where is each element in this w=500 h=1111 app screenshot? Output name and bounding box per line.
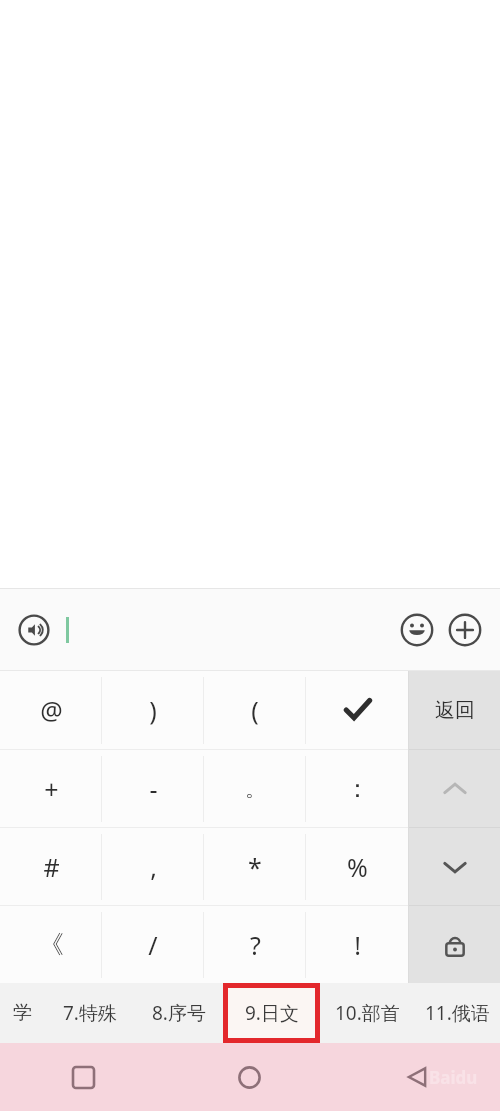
staticText: @ xyxy=(40,693,63,727)
button[interactable]: @ xyxy=(0,671,102,749)
staticText: / xyxy=(148,928,158,962)
staticText: ) xyxy=(149,693,157,727)
staticText: 学 xyxy=(13,1001,32,1025)
button[interactable]: 返回 xyxy=(409,671,500,749)
button[interactable]: Lock xyxy=(409,906,500,983)
button[interactable]: , xyxy=(102,828,204,905)
staticText: 返回 xyxy=(435,698,475,723)
staticText: 8.序号 xyxy=(152,1000,206,1026)
staticText: 9.日文 xyxy=(245,1000,299,1026)
button[interactable]: + xyxy=(0,750,102,827)
button[interactable]: 10.部首 xyxy=(320,983,415,1043)
staticText: 7.特殊 xyxy=(63,1000,117,1026)
staticText: - xyxy=(149,772,158,806)
button[interactable]: ( xyxy=(204,671,306,749)
staticText: 《 xyxy=(39,929,64,960)
staticText: ! xyxy=(354,928,361,962)
staticText: # xyxy=(43,850,60,884)
staticText: ? xyxy=(250,928,261,962)
button[interactable]: 8.序号 xyxy=(135,983,223,1043)
button[interactable]: Emoji xyxy=(396,609,438,651)
staticText: 10.部首 xyxy=(335,1000,400,1026)
button[interactable]: ： xyxy=(306,750,408,827)
staticText: , xyxy=(150,850,157,884)
button[interactable]: 。 xyxy=(204,750,306,827)
staticText: 11.俄语 xyxy=(425,1000,490,1026)
button[interactable]: / xyxy=(102,906,204,983)
button[interactable]: Home xyxy=(166,1043,333,1111)
button[interactable]: 11.俄语 xyxy=(415,983,500,1043)
staticText: 。 xyxy=(245,776,266,802)
button[interactable]: More xyxy=(444,609,486,651)
button[interactable]: Voice input xyxy=(14,610,54,650)
button[interactable]: Page up xyxy=(409,750,500,827)
button[interactable]: ! xyxy=(306,906,408,983)
button[interactable]: - xyxy=(102,750,204,827)
button[interactable]: Recent apps xyxy=(0,1043,166,1111)
button[interactable]: % xyxy=(306,828,408,905)
staticText: % xyxy=(347,850,368,884)
button[interactable]: 9.日文 xyxy=(223,983,320,1043)
staticText: ( xyxy=(251,693,259,727)
button[interactable]: Page down xyxy=(409,828,500,905)
button[interactable]: Back xyxy=(333,1043,500,1111)
staticText: ： xyxy=(345,773,370,804)
button[interactable]: 《 xyxy=(0,906,102,983)
button[interactable]: 7.特殊 xyxy=(44,983,135,1043)
button[interactable]: ) xyxy=(102,671,204,749)
staticText: * xyxy=(248,850,262,884)
button[interactable] xyxy=(306,671,408,749)
button[interactable]: 学 xyxy=(0,983,44,1043)
staticText: Baidu xyxy=(429,1066,478,1089)
button[interactable]: # xyxy=(0,828,102,905)
button[interactable]: * xyxy=(204,828,306,905)
staticText: + xyxy=(44,772,59,806)
button[interactable]: ? xyxy=(204,906,306,983)
